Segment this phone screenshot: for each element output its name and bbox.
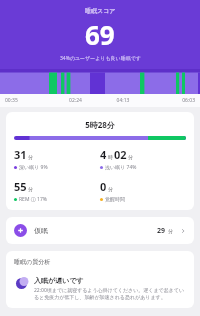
staticText: 分 [28, 154, 33, 160]
staticText: 55 [14, 179, 27, 194]
staticText: 分 [128, 154, 133, 160]
staticText: 覚醒時間 [105, 196, 125, 202]
staticText: 4 [100, 147, 107, 162]
staticText: 5時28分 [14, 119, 186, 130]
staticText: 分 [28, 186, 33, 192]
staticText: 29 [157, 226, 166, 236]
button[interactable]: Sleep tip [14, 276, 186, 301]
staticText: 69 [85, 17, 115, 52]
staticText: 31 [14, 147, 27, 162]
staticText: 睡眠の質分析 [14, 258, 51, 266]
staticText: 02 [114, 147, 127, 162]
staticText: 0 [100, 179, 107, 194]
staticText: 時 [108, 154, 113, 160]
button[interactable]: 仮眠 [6, 217, 194, 244]
staticText: 深い眠り 9% [19, 164, 48, 171]
staticText: 02:24 [52, 97, 99, 104]
staticText: 06:03 [147, 97, 195, 104]
staticText: 分 [168, 228, 173, 234]
staticText: 34%のユーザーよりも良い睡眠です [60, 55, 141, 62]
other: Open naps [180, 228, 186, 234]
staticText: 04:13 [99, 97, 147, 104]
staticText: 入眠が遅いです [34, 276, 84, 285]
other: Sleep tip [14, 276, 28, 290]
staticText: REM ⓘ 17% [19, 196, 47, 203]
staticText: 22:00頃までに就寝するよう心掛けてください。遅くまで起きていると免疫力が低下… [34, 287, 186, 301]
staticText: 分 [108, 186, 113, 192]
staticText: 浅い眠り 74% [105, 164, 137, 171]
staticText: 仮眠 [34, 226, 48, 235]
staticText: 00:35 [5, 97, 52, 104]
staticText: 睡眠スコア [85, 7, 116, 15]
